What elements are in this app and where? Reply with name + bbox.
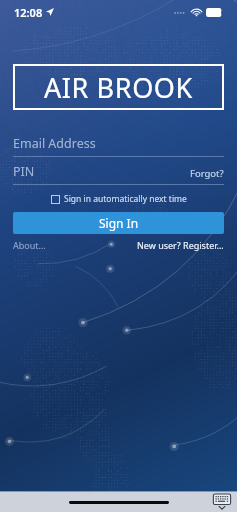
button[interactable]: About... <box>13 239 46 251</box>
button[interactable]: New user? Register... <box>137 239 224 251</box>
staticText: Sign In <box>99 215 139 231</box>
button[interactable]: PIN <box>13 163 190 180</box>
button[interactable]: Sign In <box>13 212 224 234</box>
staticText: About... <box>13 239 46 251</box>
button[interactable]: Sign in automatically next time <box>51 191 187 207</box>
staticText: Sign in automatically next time <box>64 193 187 205</box>
staticText: 12:08 <box>14 5 43 20</box>
staticText: Email Address <box>13 135 96 152</box>
staticText: Forgot? <box>190 167 224 180</box>
button[interactable]: Hide keyboard <box>212 494 232 511</box>
staticText: AIR BROOK <box>44 69 193 106</box>
button[interactable]: Forgot? <box>190 167 224 180</box>
staticText: New user? Register... <box>137 239 224 251</box>
button[interactable]: Email Address <box>13 135 224 157</box>
staticText: PIN <box>13 163 35 180</box>
